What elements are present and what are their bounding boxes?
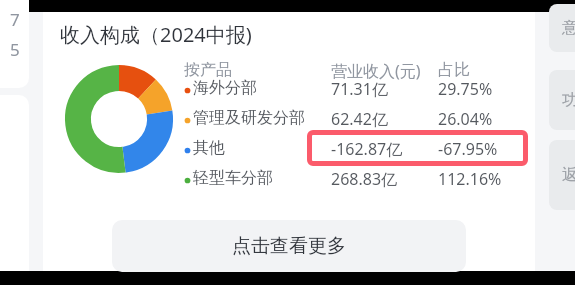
staticText: 按产品 — [184, 60, 232, 80]
staticText: 26.04% — [438, 108, 493, 130]
staticText: 112.16% — [438, 168, 502, 190]
staticText: 点击查看更多 — [232, 234, 346, 258]
button[interactable]: 点击查看更多 — [112, 220, 466, 272]
staticText: 7 — [10, 8, 20, 31]
staticText: 返 — [562, 165, 575, 185]
staticText: 其他 — [193, 138, 225, 158]
button[interactable]: 意见反馈 — [549, 4, 575, 52]
staticText: 5 — [10, 38, 20, 61]
staticText: 管理及研发分部 — [193, 108, 305, 128]
staticText: 29.75% — [438, 78, 493, 100]
staticText: 62.42亿 — [331, 108, 388, 130]
staticText: -67.95% — [438, 138, 498, 160]
button[interactable]: 功能 — [549, 70, 575, 130]
staticText: 营业收入(元) — [331, 60, 421, 82]
staticText: 268.83亿 — [331, 168, 398, 190]
staticText: 收入构成（2024中报) — [60, 21, 252, 48]
staticText: 海外分部 — [193, 78, 257, 98]
staticText: 轻型车分部 — [193, 168, 273, 188]
button[interactable]: 返回 — [549, 140, 575, 210]
staticText: 71.31亿 — [331, 78, 388, 100]
staticText: -162.87亿 — [331, 138, 403, 160]
staticText: 占比 — [438, 60, 470, 80]
staticText: 意 — [562, 18, 575, 38]
staticText: 功 — [562, 90, 575, 110]
